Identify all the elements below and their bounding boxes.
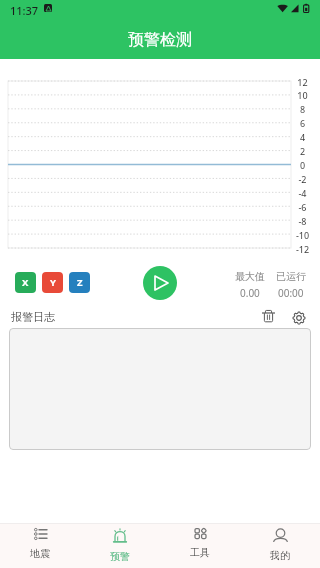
staticText: 报警日志 <box>11 310 55 324</box>
button[interactable]: Y <box>42 272 63 293</box>
staticText: 11:37 <box>10 3 39 18</box>
staticText: -8 <box>293 215 312 227</box>
staticText: -2 <box>293 173 312 185</box>
button[interactable]: 工具 <box>160 524 240 568</box>
staticText: 工具 <box>190 546 210 559</box>
staticText: Z <box>77 276 83 289</box>
staticText: 10 <box>293 89 312 101</box>
staticText: 我的 <box>270 549 290 562</box>
button[interactable]: 预警 <box>80 524 160 568</box>
staticText: 已运行 <box>276 270 306 283</box>
staticText: 12 <box>293 76 312 88</box>
staticText: 6 <box>293 117 312 129</box>
staticText: 2 <box>293 145 312 157</box>
staticText: 预警 <box>110 550 130 563</box>
staticText: -4 <box>293 187 312 199</box>
button[interactable]: 地震 <box>0 524 80 568</box>
staticText: 地震 <box>30 547 50 560</box>
button[interactable]: Clear log <box>258 306 278 326</box>
staticText: -10 <box>293 229 312 241</box>
button[interactable]: 我的 <box>240 524 320 568</box>
staticText: Y <box>50 276 56 289</box>
button[interactable]: X <box>15 272 36 293</box>
staticText: 4 <box>293 131 312 143</box>
button[interactable]: Z <box>69 272 90 293</box>
staticText: -12 <box>293 243 312 255</box>
staticText: 0.00 <box>240 286 260 300</box>
staticText: 预警检测 <box>0 30 320 50</box>
staticText: 0 <box>293 159 312 171</box>
staticText: X <box>22 276 29 289</box>
staticText: 最大值 <box>235 270 265 283</box>
staticText: 8 <box>293 103 312 115</box>
staticText: 00:00 <box>278 286 304 300</box>
button[interactable]: Start detection <box>143 266 177 300</box>
button[interactable]: Settings <box>289 308 309 328</box>
staticText: -6 <box>293 201 312 213</box>
